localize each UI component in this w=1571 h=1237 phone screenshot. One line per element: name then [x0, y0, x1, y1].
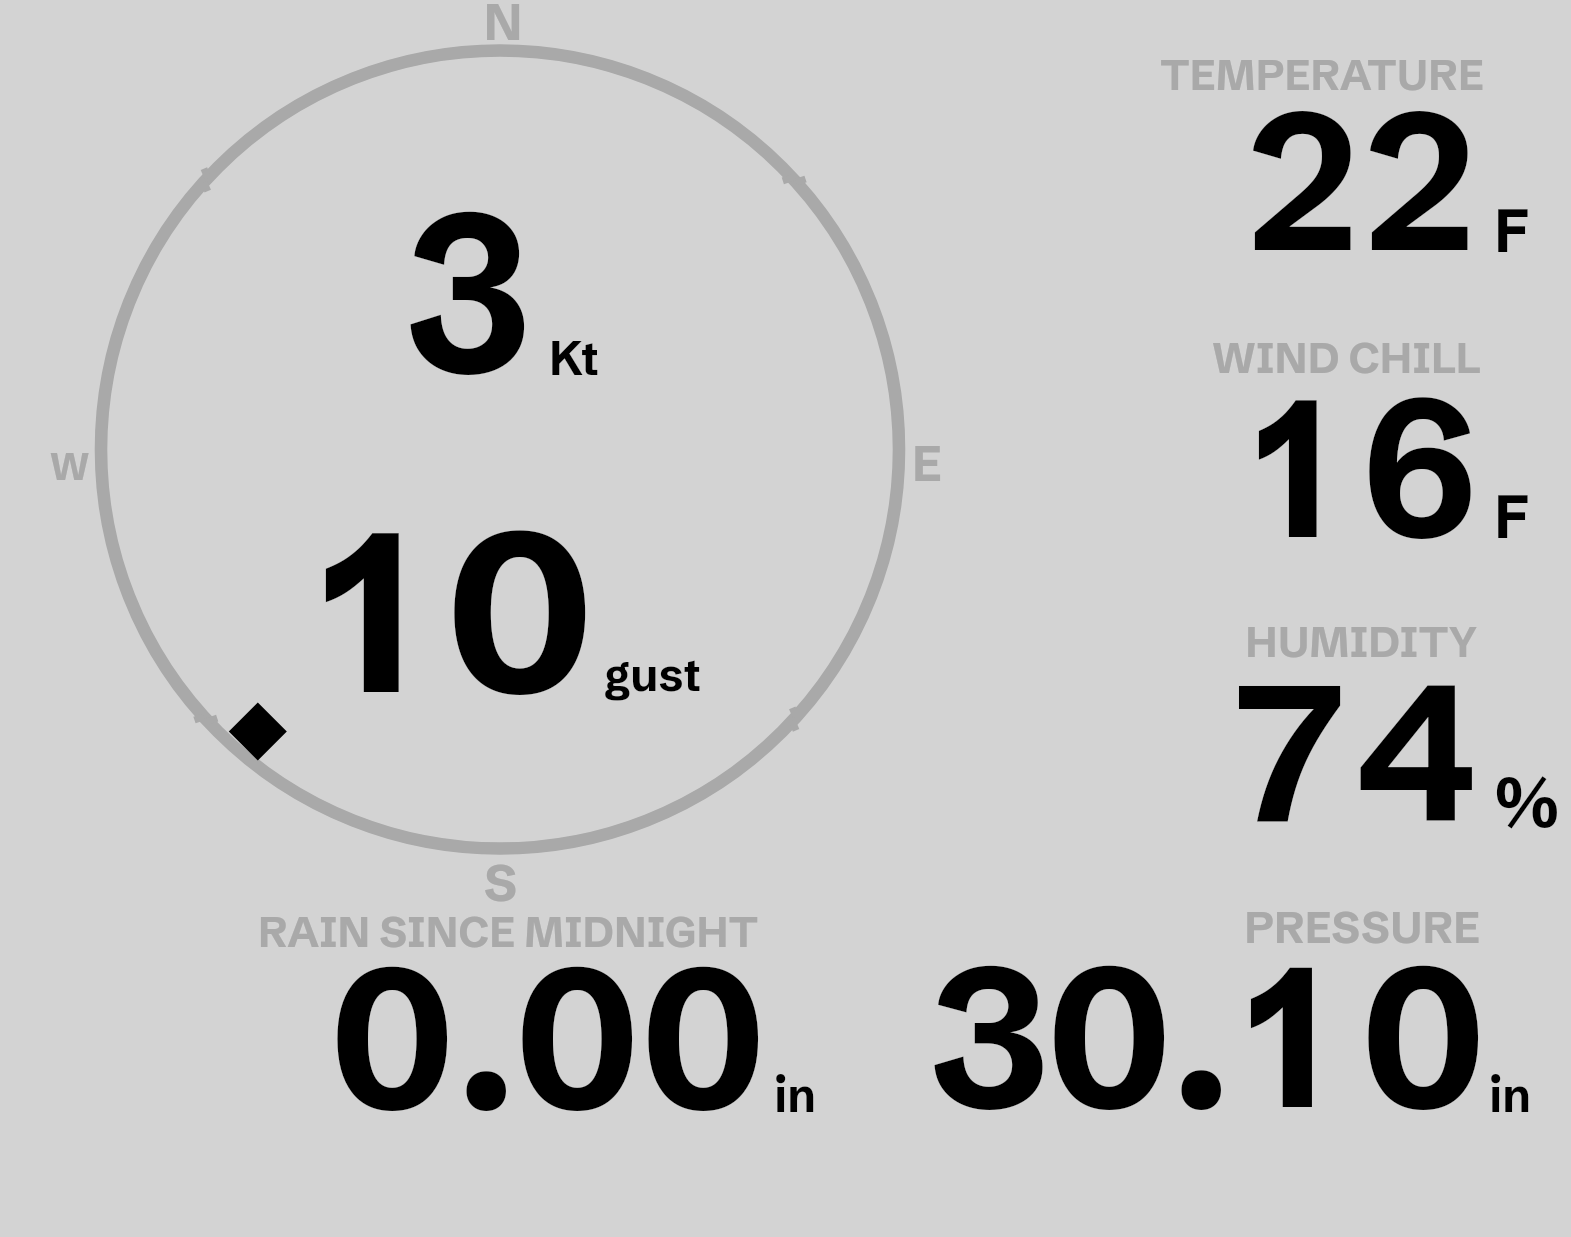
button[interactable]: Humidity 74 percent — [1100, 600, 1570, 850]
button[interactable]: Pressure 30.10 inches — [900, 900, 1540, 1130]
button[interactable]: Rain since midnight 0.00 inches — [250, 900, 830, 1130]
button[interactable]: Temperature 22 F — [1100, 30, 1570, 280]
button[interactable]: Wind chill 16 F — [1100, 320, 1570, 570]
button[interactable]: Wind 3 knots, gusting 10, direction sout… — [60, 0, 950, 900]
